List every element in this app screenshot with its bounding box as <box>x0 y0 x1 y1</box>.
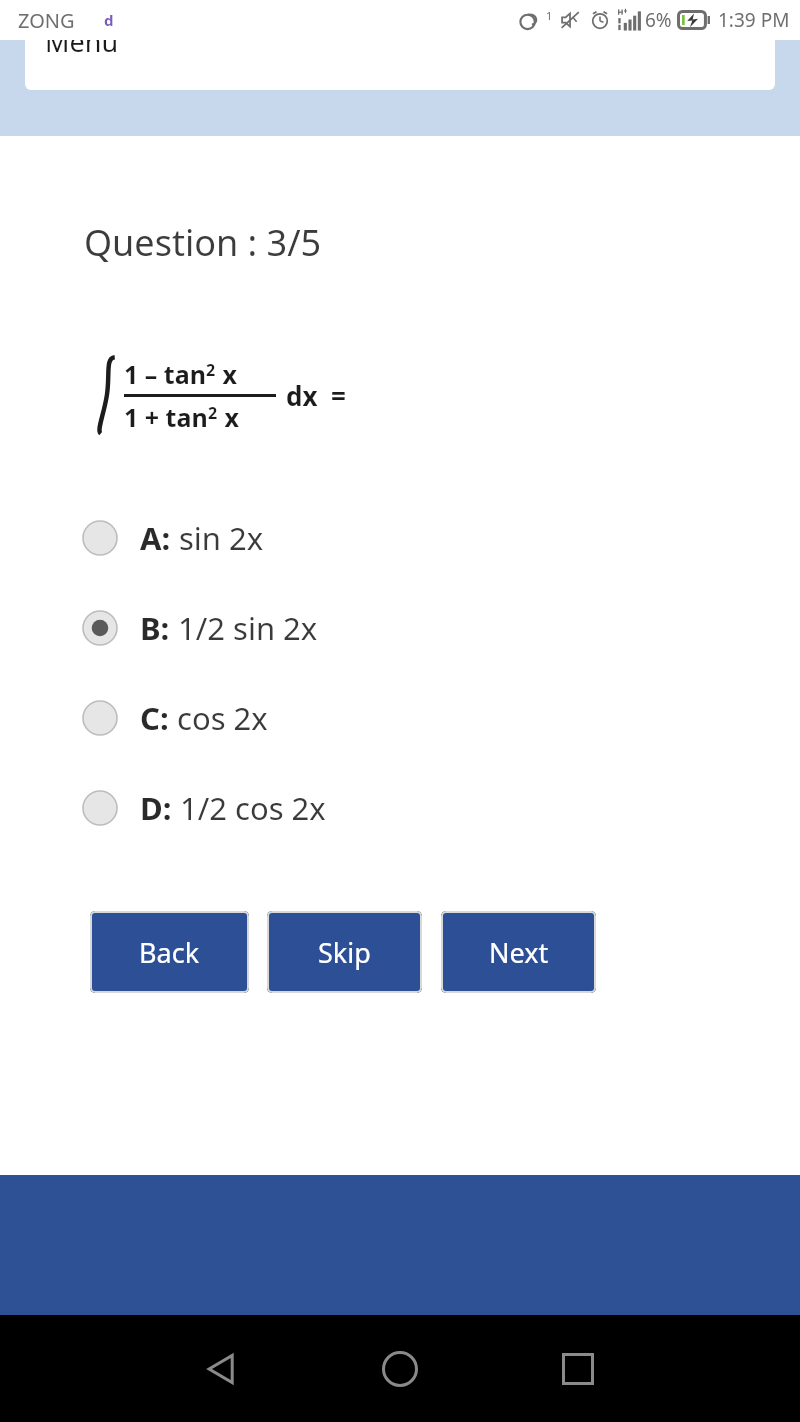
staticText: 1/2 cos 2x <box>180 787 326 829</box>
staticText: x <box>216 357 237 391</box>
staticText: 2 <box>208 402 218 424</box>
staticText: ZONG <box>18 7 75 34</box>
staticText: 1 – tan <box>124 357 206 391</box>
staticText: d <box>104 10 114 30</box>
staticText: 1 + tan <box>124 400 208 434</box>
button[interactable]: Back <box>190 1337 254 1401</box>
button[interactable]: Home <box>368 1337 432 1401</box>
staticText: Menu <box>45 40 119 60</box>
staticText: sin 2x <box>179 517 264 559</box>
staticText: dx = <box>286 378 346 413</box>
staticText: 1:39 PM <box>718 7 790 33</box>
staticText: Next <box>489 934 549 971</box>
button[interactable]: Back <box>90 911 249 993</box>
staticText: 2 <box>206 359 216 381</box>
button[interactable]: Next <box>441 911 596 993</box>
staticText: 6% <box>645 7 672 33</box>
button[interactable]: D: <box>0 763 800 853</box>
staticText: Question : 3/5 <box>84 218 322 267</box>
button[interactable]: A: <box>0 493 800 583</box>
staticText: x <box>218 400 239 434</box>
button[interactable]: Menu <box>25 40 775 90</box>
button[interactable]: B: <box>0 583 800 673</box>
staticText: C: <box>140 697 169 739</box>
staticText: 1/2 sin 2x <box>178 607 318 649</box>
staticText: B: <box>140 607 170 649</box>
staticText: D: <box>140 787 172 829</box>
button[interactable]: Skip <box>267 911 422 993</box>
button[interactable]: Recent apps <box>546 1337 610 1401</box>
staticText: 1 <box>546 8 553 23</box>
staticText: A: <box>140 517 171 559</box>
staticText: Back <box>139 934 200 971</box>
button[interactable]: C: <box>0 673 800 763</box>
staticText: cos 2x <box>177 697 268 739</box>
staticText: Skip <box>318 934 371 971</box>
